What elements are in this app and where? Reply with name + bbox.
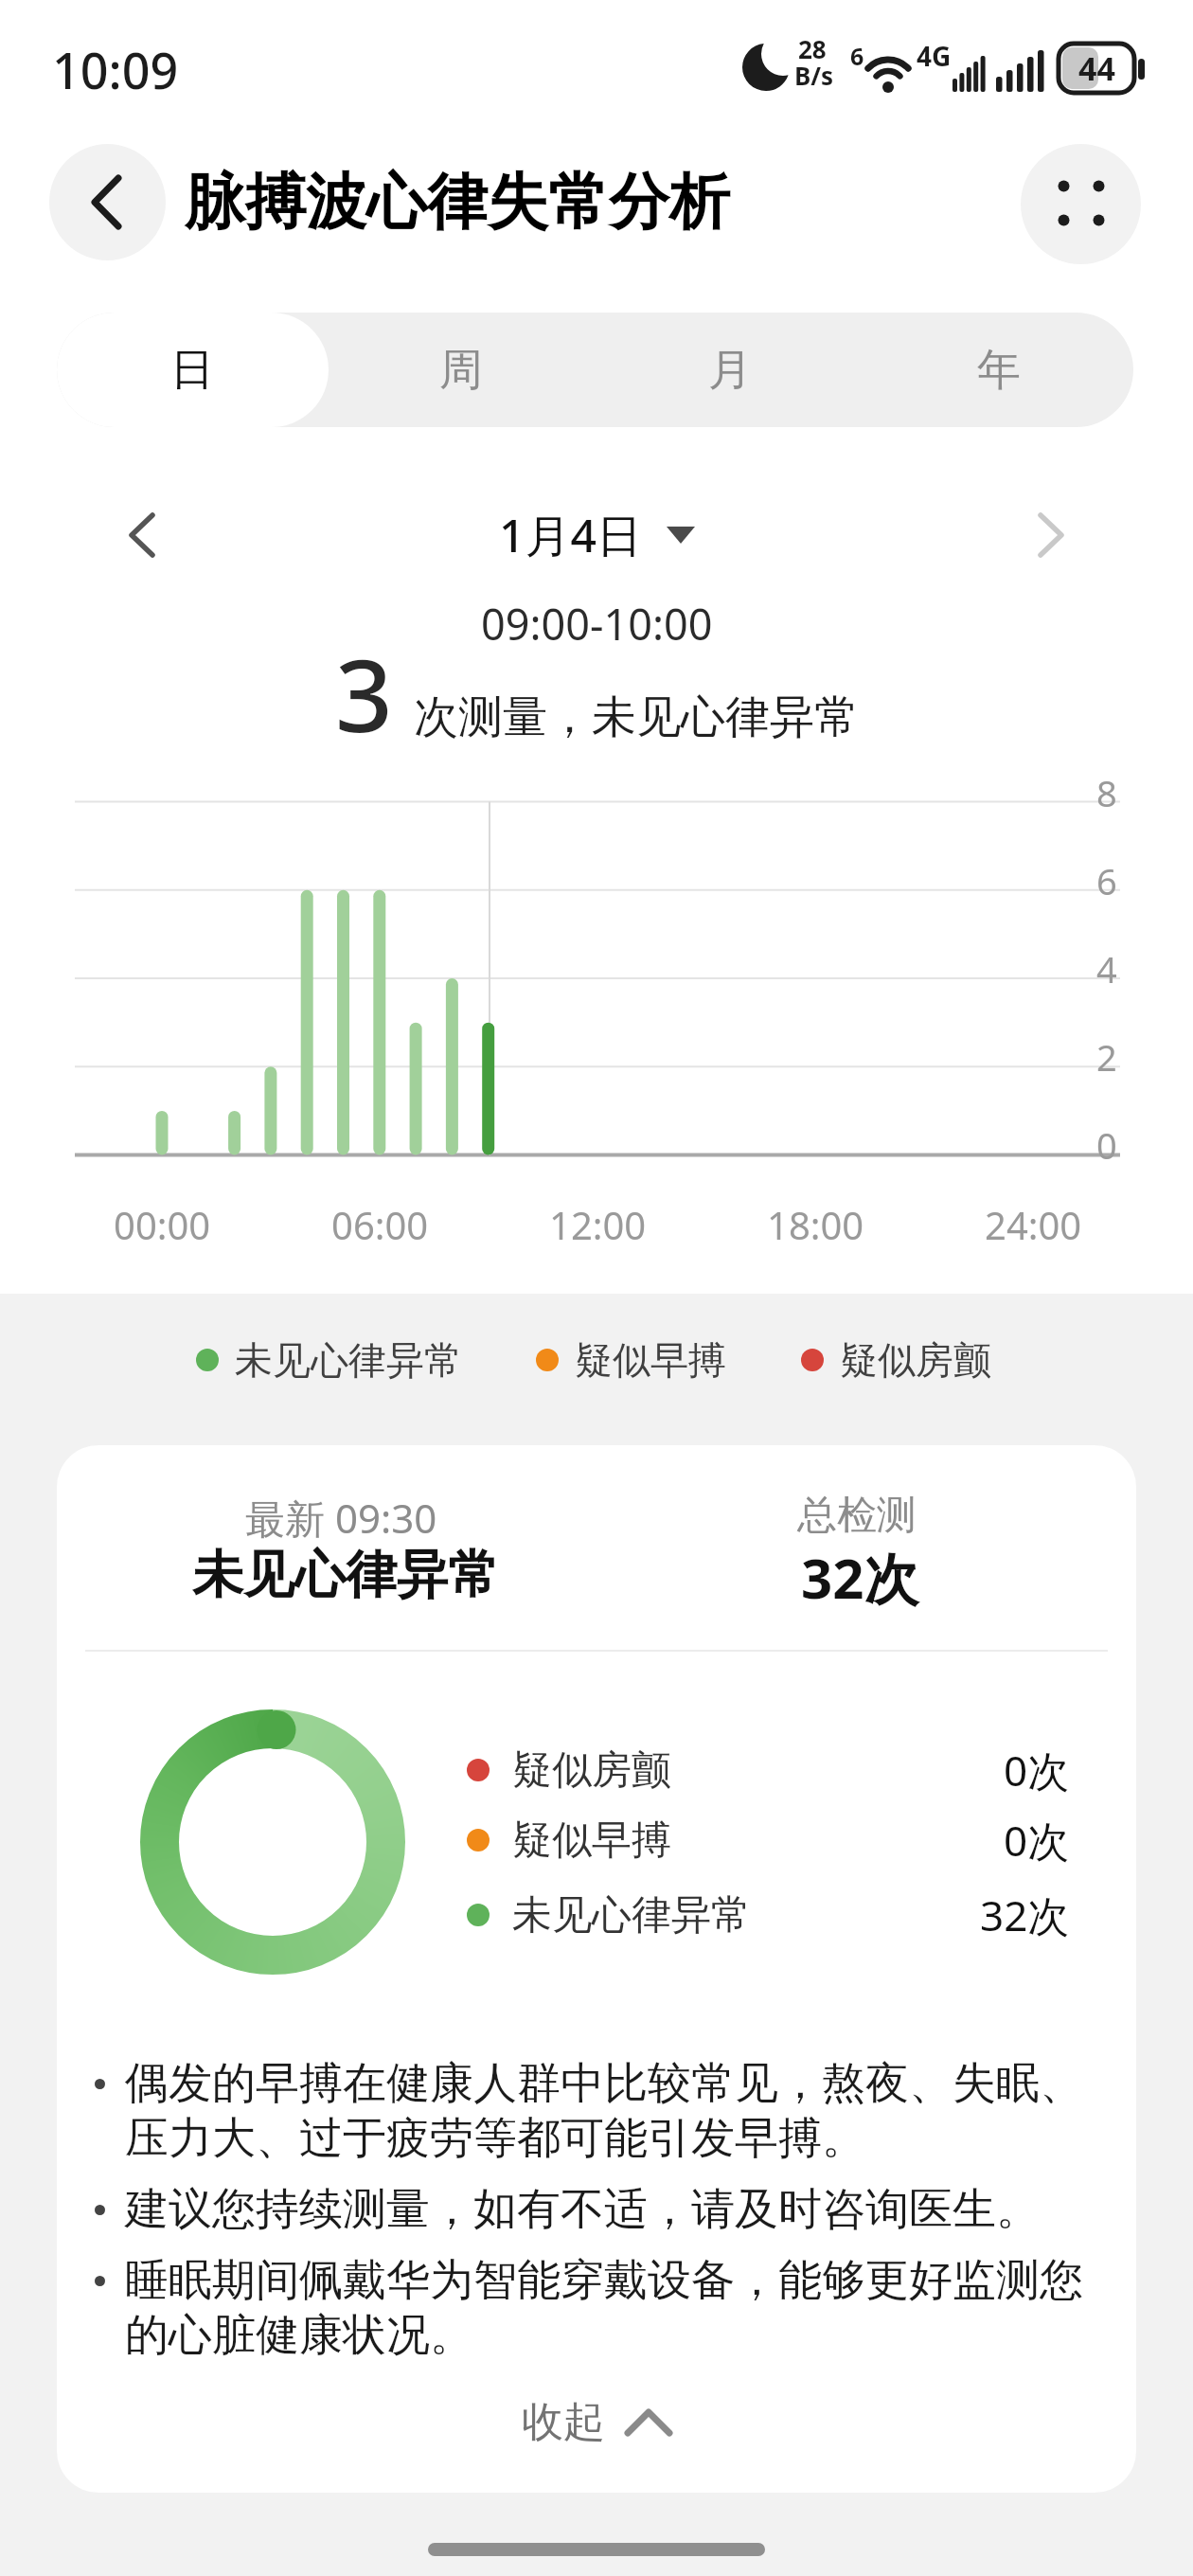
- staticText: 3: [335, 625, 393, 761]
- staticText: 4G: [917, 38, 952, 74]
- staticText: 10:09: [52, 36, 179, 103]
- staticText: 疑似早搏: [512, 1816, 671, 1866]
- staticText: 12:00: [549, 1199, 647, 1250]
- staticText: 未见心律异常: [192, 1543, 499, 1607]
- staticText: 6: [1096, 856, 1117, 905]
- button[interactable]: [49, 144, 166, 260]
- staticText: 8: [1096, 768, 1117, 817]
- button[interactable]: 日: [57, 313, 327, 427]
- staticText: 疑似房颤: [840, 1336, 991, 1384]
- staticText: 脉搏波心律失常分析: [185, 164, 730, 241]
- button[interactable]: [1004, 492, 1098, 578]
- staticText: 疑似早搏: [575, 1336, 726, 1384]
- staticText: 日: [170, 343, 214, 398]
- staticText: 44: [1078, 46, 1115, 90]
- staticText: 1月4日: [499, 504, 642, 566]
- staticText: 6: [850, 40, 864, 72]
- button[interactable]: 1月4日: [407, 492, 786, 578]
- button[interactable]: 月: [596, 313, 864, 427]
- staticText: 次测量，未见心律异常: [414, 689, 859, 745]
- staticText: B/s: [794, 59, 834, 92]
- staticText: 未见心律异常: [512, 1890, 751, 1941]
- staticText: 建议您持续测量，如有不适，请及时咨询医生。: [125, 2182, 1102, 2237]
- staticText: 周: [439, 343, 483, 398]
- staticText: 4: [1096, 944, 1117, 993]
- staticText: 32次: [801, 1540, 919, 1615]
- staticText: 最新 09:30: [245, 1491, 437, 1545]
- staticText: 月: [708, 343, 752, 398]
- staticText: 未见心律异常: [235, 1336, 462, 1384]
- staticText: 0次: [1004, 1742, 1070, 1798]
- button[interactable]: 年: [864, 313, 1133, 427]
- staticText: 18:00: [767, 1199, 864, 1250]
- button[interactable]: [1021, 144, 1141, 264]
- staticText: 24:00: [985, 1199, 1082, 1250]
- staticText: 0: [1096, 1120, 1117, 1170]
- staticText: 06:00: [331, 1199, 429, 1250]
- staticText: 32次: [980, 1887, 1070, 1943]
- staticText: 0次: [1004, 1812, 1070, 1869]
- button[interactable]: 周: [327, 313, 596, 427]
- staticText: 睡眠期间佩戴华为智能穿戴设备，能够更好监测您的心脏健康状况。: [125, 2253, 1102, 2363]
- staticText: 总检测: [797, 1491, 917, 1541]
- staticText: 疑似房颤: [512, 1745, 671, 1796]
- staticText: 2: [1096, 1032, 1117, 1082]
- staticText: 收起: [522, 2396, 605, 2448]
- staticText: 28: [798, 32, 827, 65]
- staticText: 09:00-10:00: [481, 595, 713, 653]
- staticText: 年: [977, 343, 1021, 398]
- button[interactable]: 收起: [522, 2396, 671, 2448]
- button[interactable]: [95, 492, 189, 578]
- staticText: 00:00: [114, 1199, 211, 1250]
- staticText: 偶发的早搏在健康人群中比较常见，熬夜、失眠、压力大、过于疲劳等都可能引发早搏。: [125, 2056, 1102, 2166]
